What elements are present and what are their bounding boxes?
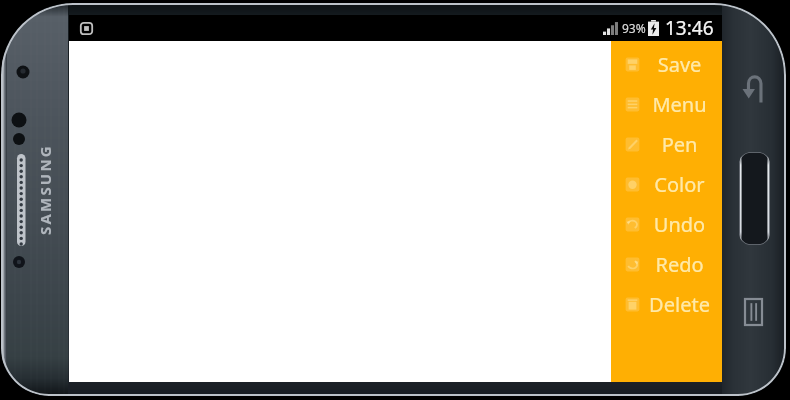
button[interactable]: Delete	[611, 284, 722, 324]
button[interactable]: Color	[611, 164, 722, 204]
staticText: 93%	[622, 20, 646, 36]
staticText: 13:46	[665, 15, 714, 41]
button[interactable]: Home	[739, 152, 770, 245]
button[interactable]: Recent apps	[745, 299, 762, 325]
staticText: SAMSUNG	[35, 144, 53, 235]
button[interactable]: Save	[611, 44, 722, 84]
button[interactable]: Undo	[611, 204, 722, 244]
button[interactable]: Redo	[611, 244, 722, 284]
staticText: Save	[641, 51, 718, 78]
staticText: Undo	[641, 211, 718, 238]
button[interactable]: Back	[742, 74, 766, 104]
button[interactable]: Menu	[611, 84, 722, 124]
staticText: Color	[641, 171, 718, 198]
button[interactable]: Pen	[611, 124, 722, 164]
staticText: Redo	[641, 251, 718, 278]
staticText: Delete	[641, 291, 718, 318]
staticText: Menu	[641, 91, 718, 118]
staticText: Pen	[641, 131, 718, 158]
